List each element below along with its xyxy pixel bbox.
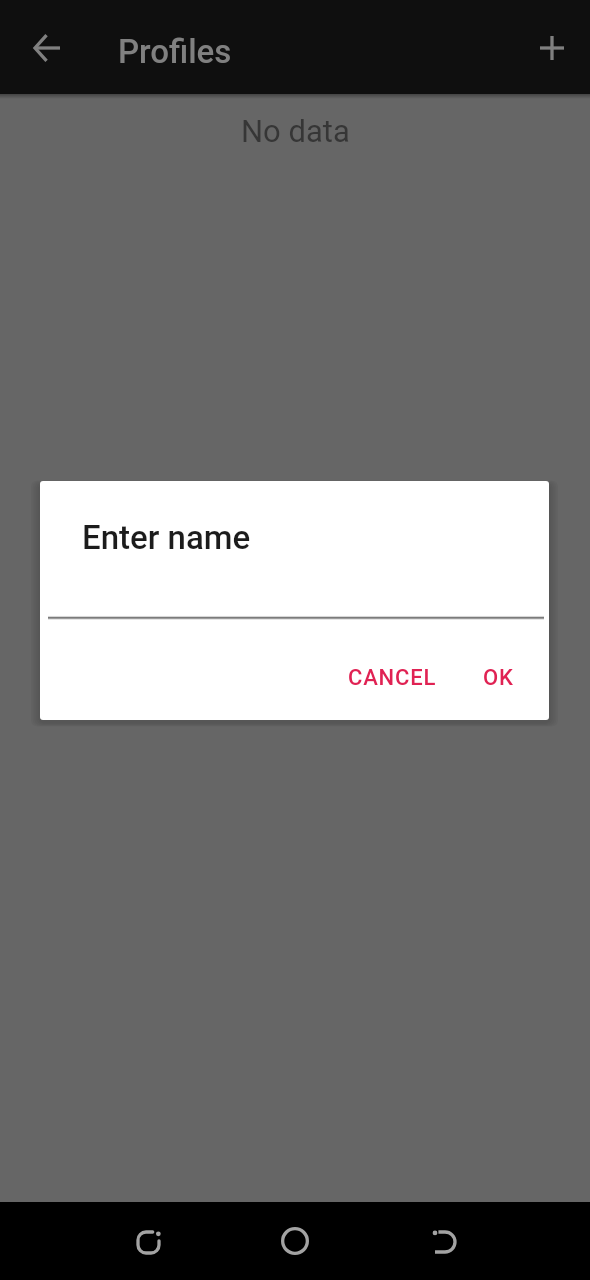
staticText: No data [241, 113, 350, 149]
button[interactable]: CANCEL [332, 651, 453, 705]
button[interactable]: OK [467, 651, 530, 705]
staticText: Profiles [118, 32, 232, 71]
staticText: CANCEL [348, 665, 437, 691]
button[interactable]: Back [410, 1208, 480, 1278]
button[interactable]: Home [260, 1206, 330, 1276]
button[interactable]: Navigate up [0, 0, 94, 94]
button[interactable]: Add profile [505, 1, 590, 95]
staticText: OK [483, 665, 514, 691]
staticText: Enter name [82, 518, 251, 557]
button[interactable]: Recent apps [113, 1207, 183, 1277]
